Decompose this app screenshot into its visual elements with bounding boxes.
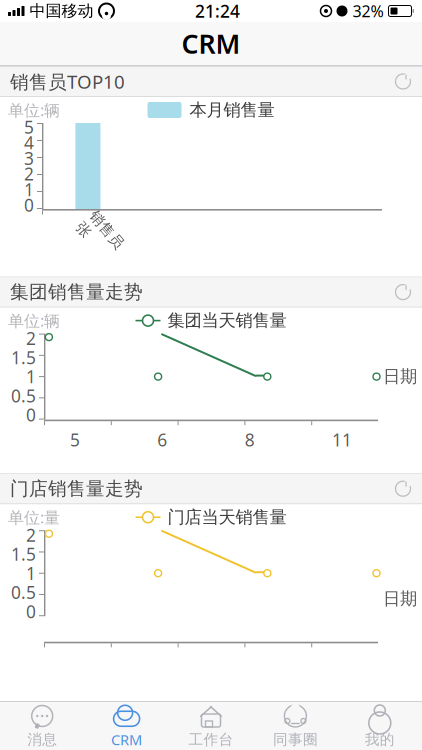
staticText: 0 — [26, 403, 36, 426]
staticText: 销售员TOP10 — [10, 69, 125, 94]
staticText: 2 — [26, 327, 36, 350]
staticText: 集团当天销售量 — [167, 310, 286, 331]
staticText: 0.5 — [11, 384, 36, 407]
staticText: 0.5 — [11, 581, 36, 604]
button[interactable]: 门店销售量走势 — [0, 474, 422, 503]
staticText: 0 — [26, 600, 36, 623]
button[interactable]: 消息 — [0, 702, 84, 750]
staticText: 集团销售量走势 — [10, 281, 143, 303]
button[interactable]: 销售员TOP10 — [0, 67, 422, 96]
staticText: 中国移动 — [29, 1, 93, 21]
staticText: 32% — [352, 0, 383, 22]
staticText: 1.5 — [11, 346, 36, 369]
staticText: 消息 — [27, 730, 57, 748]
staticText: 同事圈 — [273, 730, 318, 748]
button[interactable]: 工作台 — [169, 702, 253, 750]
staticText: 日期 — [383, 588, 417, 609]
staticText: 21:24 — [195, 0, 240, 22]
button[interactable]: 集团销售量走势 — [0, 278, 422, 307]
staticText: 单位:辆 — [8, 99, 60, 121]
button[interactable]: CRM — [84, 702, 169, 750]
staticText: 2 — [26, 523, 36, 546]
staticText: 5 — [24, 115, 34, 138]
staticText: 1 — [26, 562, 36, 585]
button[interactable]: 同事圈 — [253, 702, 338, 750]
staticText: 0 — [24, 194, 34, 217]
staticText: 4 — [24, 131, 34, 154]
staticText: CRM — [181, 26, 240, 61]
staticText: 5 — [70, 428, 80, 451]
staticText: CRM — [111, 730, 142, 749]
staticText: 单位:量 — [8, 507, 60, 528]
staticText: 本月销售量 — [189, 99, 274, 121]
staticText: 门店当天销售量 — [167, 507, 286, 528]
staticText: 8 — [245, 428, 255, 451]
staticText: 3 — [24, 147, 34, 170]
staticText: 11 — [332, 428, 352, 451]
staticText: 工作台 — [188, 730, 233, 748]
staticText: 1 — [26, 365, 36, 388]
button[interactable]: 我的 — [338, 702, 422, 750]
staticText: 2 — [24, 162, 34, 185]
staticText: 1 — [24, 178, 34, 201]
staticText: 我的 — [365, 730, 395, 748]
staticText: 1.5 — [11, 543, 36, 566]
staticText: 单位:辆 — [8, 310, 60, 331]
staticText: 6 — [157, 428, 167, 451]
staticText: 日期 — [383, 366, 417, 387]
staticText: 销售员张 — [77, 218, 122, 254]
staticText: 门店销售量走势 — [10, 477, 143, 500]
